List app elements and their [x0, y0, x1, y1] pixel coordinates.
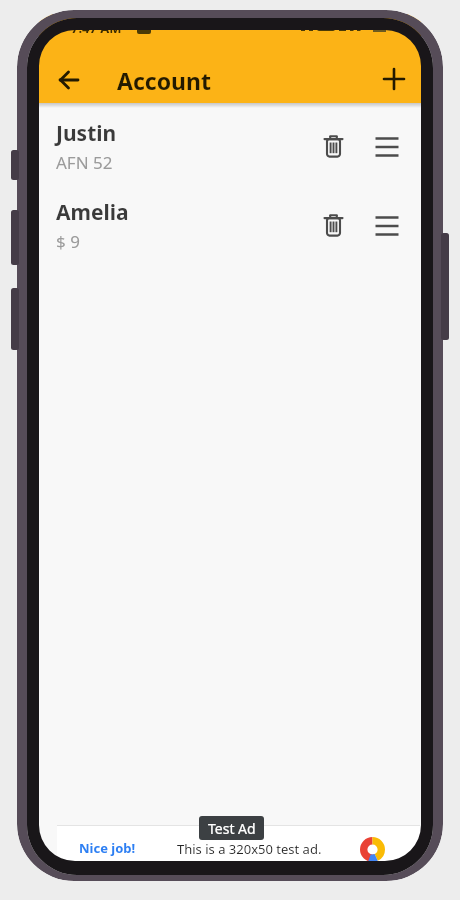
- button[interactable]: [57, 68, 81, 92]
- button[interactable]: [320, 133, 347, 160]
- button[interactable]: [374, 213, 400, 239]
- staticText: Test Ad: [208, 819, 256, 838]
- staticText: Amelia: [56, 198, 129, 227]
- button[interactable]: [374, 134, 400, 160]
- staticText: $ 9: [56, 230, 80, 253]
- button[interactable]: [320, 212, 347, 239]
- button[interactable]: Amelia: [39, 186, 421, 265]
- staticText: Account: [117, 65, 211, 96]
- staticText: Nice job!: [79, 839, 136, 857]
- staticText: AFN 52: [56, 151, 113, 174]
- button[interactable]: [382, 67, 406, 91]
- staticText: Justin: [56, 119, 117, 148]
- button[interactable]: Nice job!: [57, 825, 420, 861]
- button[interactable]: Justin: [39, 107, 421, 186]
- staticText: 7:47 AM: [71, 19, 122, 37]
- staticText: This is a 320x50 test ad.: [177, 840, 322, 858]
